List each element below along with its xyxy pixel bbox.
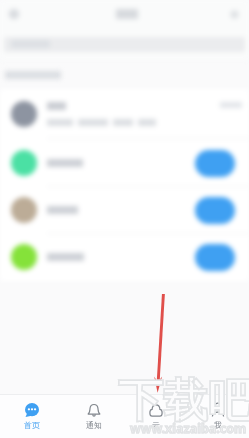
button[interactable] xyxy=(0,233,249,281)
button[interactable]: Follow xyxy=(196,247,233,268)
button[interactable] xyxy=(0,89,249,138)
staticText: 首页 xyxy=(24,420,40,430)
button[interactable]: Notifications xyxy=(63,394,125,438)
button[interactable]: Search xyxy=(0,29,249,48)
button[interactable]: Me xyxy=(187,394,249,438)
staticText: 通知 xyxy=(86,420,102,430)
staticText: 下载吧 xyxy=(118,373,249,430)
button[interactable]: Cloud xyxy=(125,394,187,438)
staticText: www.xiazaiba.com xyxy=(130,420,247,437)
button[interactable] xyxy=(0,186,249,233)
button[interactable] xyxy=(0,138,249,186)
staticText: www.xiazaiba.com xyxy=(130,420,247,437)
staticText: 下载吧 xyxy=(118,373,249,430)
button[interactable]: Add xyxy=(221,0,249,28)
staticText: 我 xyxy=(214,420,222,430)
button[interactable]: Home xyxy=(0,394,63,438)
button[interactable]: Follow xyxy=(196,200,233,221)
button[interactable]: Profile xyxy=(2,0,30,28)
button[interactable]: Follow xyxy=(196,153,233,174)
staticText: 云 xyxy=(152,420,160,430)
